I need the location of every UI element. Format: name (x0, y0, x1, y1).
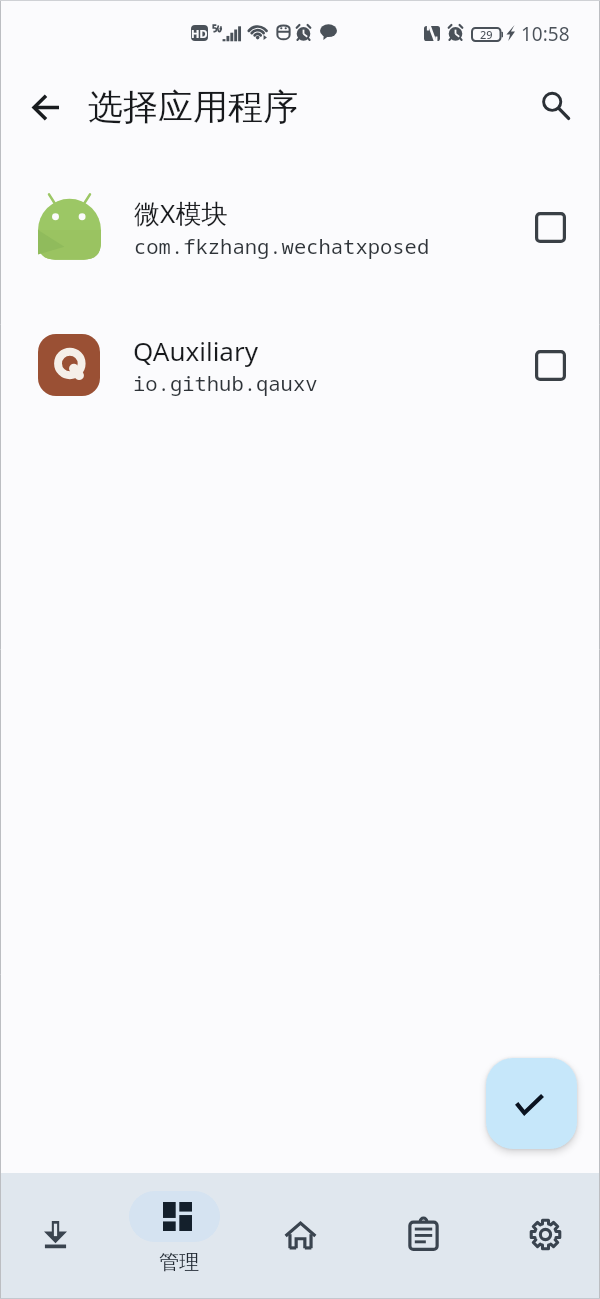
staticText: 10:58 (521, 21, 570, 47)
button[interactable]: Select 微X模块 (524, 201, 576, 253)
button[interactable]: Settings (501, 1173, 590, 1299)
button[interactable]: Home (256, 1173, 345, 1299)
button[interactable]: Search (528, 79, 584, 135)
button[interactable]: Select QAuxiliary (524, 339, 576, 391)
staticText: QAuxiliary (133, 333, 258, 368)
button[interactable]: Downloads (11, 1173, 100, 1299)
staticText: 29 (480, 27, 493, 42)
button[interactable]: 管理 (129, 1173, 220, 1299)
staticText: HD (191, 26, 208, 41)
button[interactable]: 微X模块 (0, 185, 600, 269)
staticText: com.fkzhang.wechatxposed (134, 232, 430, 260)
button[interactable]: Logs (379, 1173, 468, 1299)
button[interactable]: Back (18, 79, 74, 135)
staticText: io.github.qauxv (133, 369, 318, 397)
button[interactable]: QAuxiliary (0, 323, 600, 407)
staticText: 微X模块 (134, 195, 228, 231)
button[interactable]: Confirm selection (486, 1058, 577, 1149)
staticText: 管理 (159, 1250, 199, 1275)
staticText: 选择应用程序 (88, 85, 298, 129)
